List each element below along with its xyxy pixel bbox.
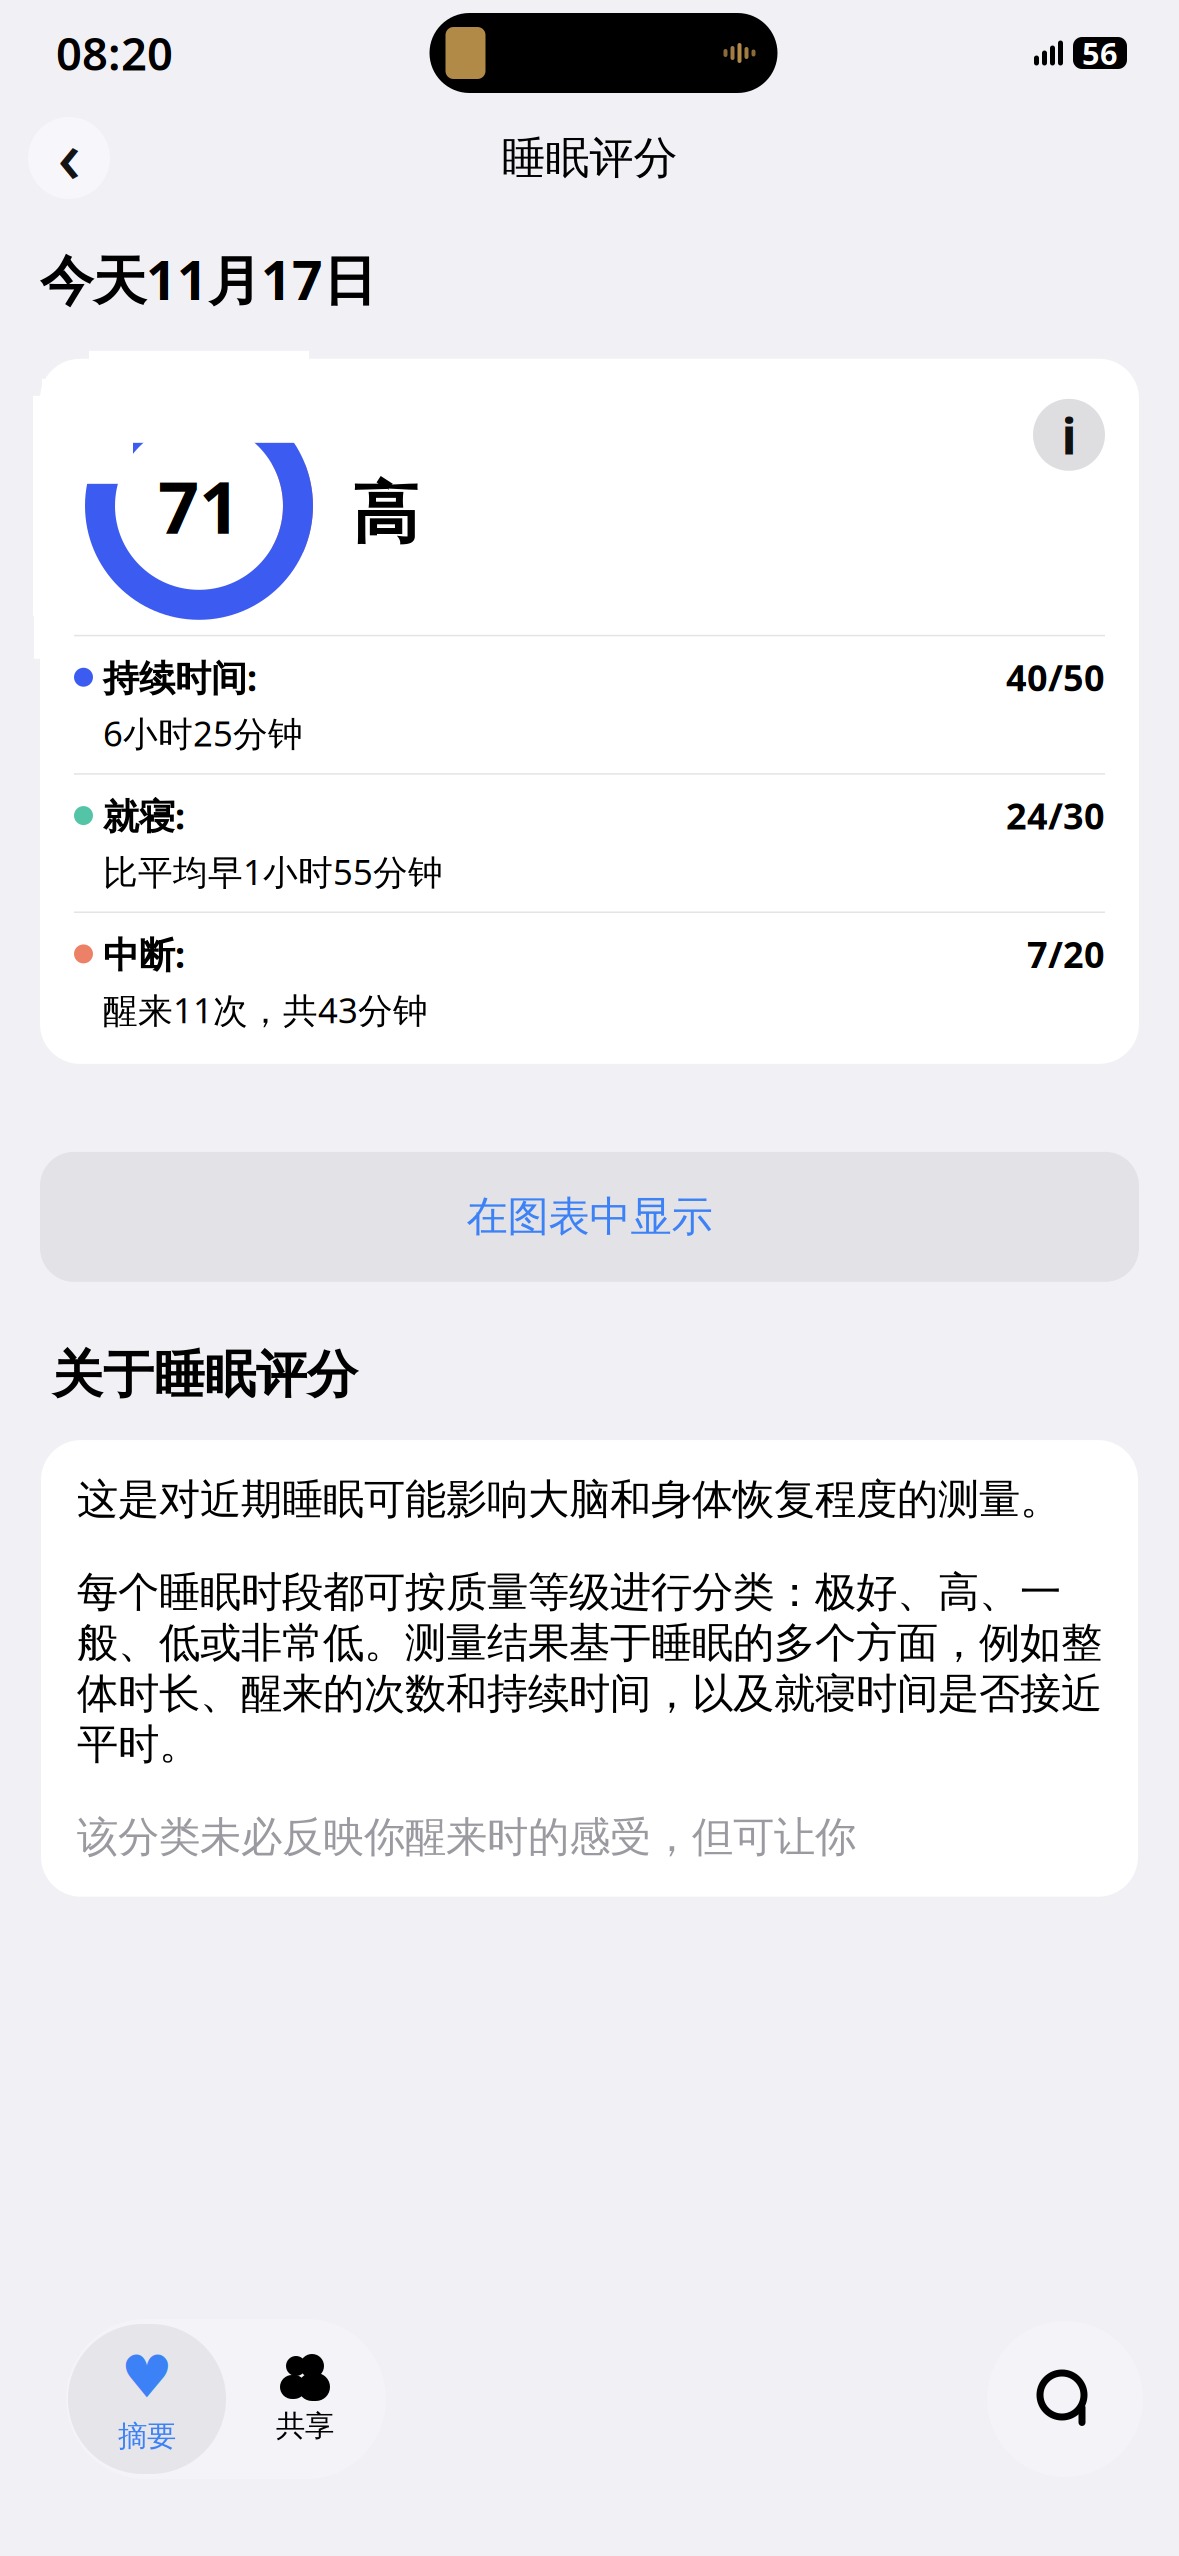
staticText: 高 <box>352 473 419 555</box>
staticText: i <box>1061 401 1076 468</box>
button[interactable]: 在图表中显示 <box>40 1152 1139 1282</box>
staticText: 关于睡眠评分 <box>52 1344 358 1406</box>
staticText: 共享 <box>276 2408 334 2444</box>
staticText: ♥ <box>120 2344 173 2410</box>
staticText: 71 <box>158 458 240 554</box>
staticText: 每个睡眠时段都可按质量等级进行分类：极好、高、一般、低或非常低。测量结果基于睡眠… <box>77 1567 1102 1770</box>
button[interactable]: Back <box>28 107 110 209</box>
staticText: 该分类未必反映你醒来时的感受，但可让你 <box>77 1812 856 1863</box>
staticText: 就寝: <box>103 792 185 839</box>
button[interactable]: 搜索 <box>987 2321 1143 2477</box>
button[interactable]: ♥ <box>68 2324 226 2474</box>
button[interactable]: 共享 <box>226 2324 384 2474</box>
staticText: 摘要 <box>118 2418 176 2454</box>
staticText: 这是对近期睡眠可能影响大脑和身体恢复程度的测量。 <box>77 1474 1061 1525</box>
staticText: 醒来11次，共43分钟 <box>103 987 428 1033</box>
staticText: 7/20 <box>1027 930 1105 978</box>
staticText: 40/50 <box>1006 653 1105 701</box>
staticText: 6小时25分钟 <box>103 710 303 756</box>
staticText: 在图表中显示 <box>466 1191 712 1242</box>
staticText: 08:20 <box>56 23 173 83</box>
staticText: 今天11月17日 <box>40 244 376 315</box>
staticText: 睡眠评分 <box>501 131 677 185</box>
staticText: 持续时间: <box>103 653 257 701</box>
button[interactable]: 详细信息 <box>1033 399 1105 471</box>
staticText: 56 <box>1082 33 1118 73</box>
staticText: 比平均早1小时55分钟 <box>103 848 443 894</box>
staticText: ‹ <box>57 107 80 203</box>
staticText: 24/30 <box>1006 792 1105 839</box>
staticText: 中断: <box>103 930 185 978</box>
